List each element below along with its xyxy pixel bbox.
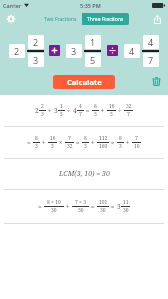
staticText: 3 [33, 54, 39, 66]
button[interactable]: Three Fractions [82, 13, 129, 25]
staticText: = [109, 202, 117, 211]
staticText: 16 [109, 103, 115, 110]
button[interactable]: 2 [28, 35, 44, 49]
button[interactable]: 4 [124, 44, 140, 58]
staticText: 8 [94, 103, 97, 110]
staticText: 7 [135, 135, 138, 142]
staticText: 7 [68, 135, 71, 142]
staticText: + [46, 106, 54, 115]
staticText: ÷ [65, 106, 73, 115]
button[interactable]: 5 [85, 53, 101, 67]
staticText: 11 [123, 199, 129, 206]
button[interactable]: Settings [3, 11, 19, 27]
staticText: 3 [71, 45, 77, 57]
staticText: 3 [41, 111, 44, 118]
staticText: 112 [99, 135, 108, 142]
staticText: LCM(3, 10) = 30 [59, 169, 110, 179]
staticText: 3 [35, 143, 38, 150]
button[interactable]: 2 [9, 44, 25, 58]
button[interactable]: Clear [150, 75, 163, 88]
staticText: 3 [119, 143, 122, 150]
staticText: 2 [41, 103, 44, 110]
staticText: Calculate [67, 77, 102, 87]
staticText: + [124, 138, 132, 147]
staticText: 2 [14, 45, 20, 57]
staticText: + [89, 138, 97, 147]
staticText: 1 [60, 103, 63, 110]
staticText: Carrier [3, 2, 22, 9]
staticText: 32 [126, 103, 132, 110]
staticText: 101 [99, 199, 108, 206]
button[interactable]: Share [149, 11, 165, 27]
staticText: = [74, 138, 82, 147]
staticText: 5 [60, 111, 63, 118]
staticText: 5 [51, 143, 54, 150]
staticText: 16 [50, 135, 56, 142]
button[interactable]: Divide [107, 45, 118, 56]
staticText: 2 [35, 106, 39, 115]
staticText: 8 [35, 135, 38, 142]
staticText: 8 [84, 135, 87, 142]
staticText: 30 [123, 207, 129, 214]
staticText: 7 [148, 54, 154, 66]
staticText: = [89, 202, 97, 211]
staticText: 160 [99, 143, 108, 150]
staticText: 5 [110, 111, 113, 118]
staticText: ÷ [116, 106, 124, 115]
staticText: 3 [54, 106, 58, 115]
staticText: 30 [78, 207, 84, 214]
staticText: 4 [129, 45, 135, 57]
staticText: + [40, 138, 48, 147]
staticText: 7 [79, 111, 82, 118]
staticText: = [84, 106, 92, 115]
staticText: 3 [94, 111, 97, 118]
staticText: 32 [67, 143, 73, 150]
staticText: = [27, 138, 33, 147]
staticText: 5:35 PM [80, 2, 101, 9]
button[interactable]: Plus [49, 45, 60, 56]
staticText: 4 [79, 103, 82, 110]
staticText: 5 [90, 54, 96, 66]
button[interactable]: 7 [143, 53, 159, 67]
staticText: + [99, 106, 107, 115]
staticText: 1 [90, 36, 96, 48]
staticText: 7 × 3 [75, 199, 86, 206]
button[interactable]: 3 [66, 44, 82, 58]
staticText: = [38, 202, 44, 211]
staticText: 10 [134, 143, 140, 150]
staticText: 4 [148, 36, 154, 48]
button[interactable]: Two Fractions [39, 13, 82, 25]
staticText: Two Fractions [44, 16, 77, 23]
staticText: Three Fractions [87, 16, 124, 23]
button[interactable]: Calculate [53, 75, 115, 89]
staticText: + [64, 202, 72, 211]
staticText: 8 × 10 [47, 199, 61, 206]
staticText: 8 [119, 135, 122, 142]
staticText: 2 [33, 36, 39, 48]
staticText: 30 [51, 207, 57, 214]
staticText: = [109, 138, 117, 147]
staticText: 3 [84, 143, 87, 150]
staticText: 30 [100, 207, 106, 214]
staticText: 7 [127, 111, 130, 118]
staticText: × [57, 138, 65, 147]
button[interactable]: 3 [28, 53, 44, 67]
staticText: 3 [117, 202, 121, 211]
staticText: 4 [73, 106, 77, 115]
button[interactable]: 4 [143, 35, 159, 49]
button[interactable]: 1 [85, 35, 101, 49]
